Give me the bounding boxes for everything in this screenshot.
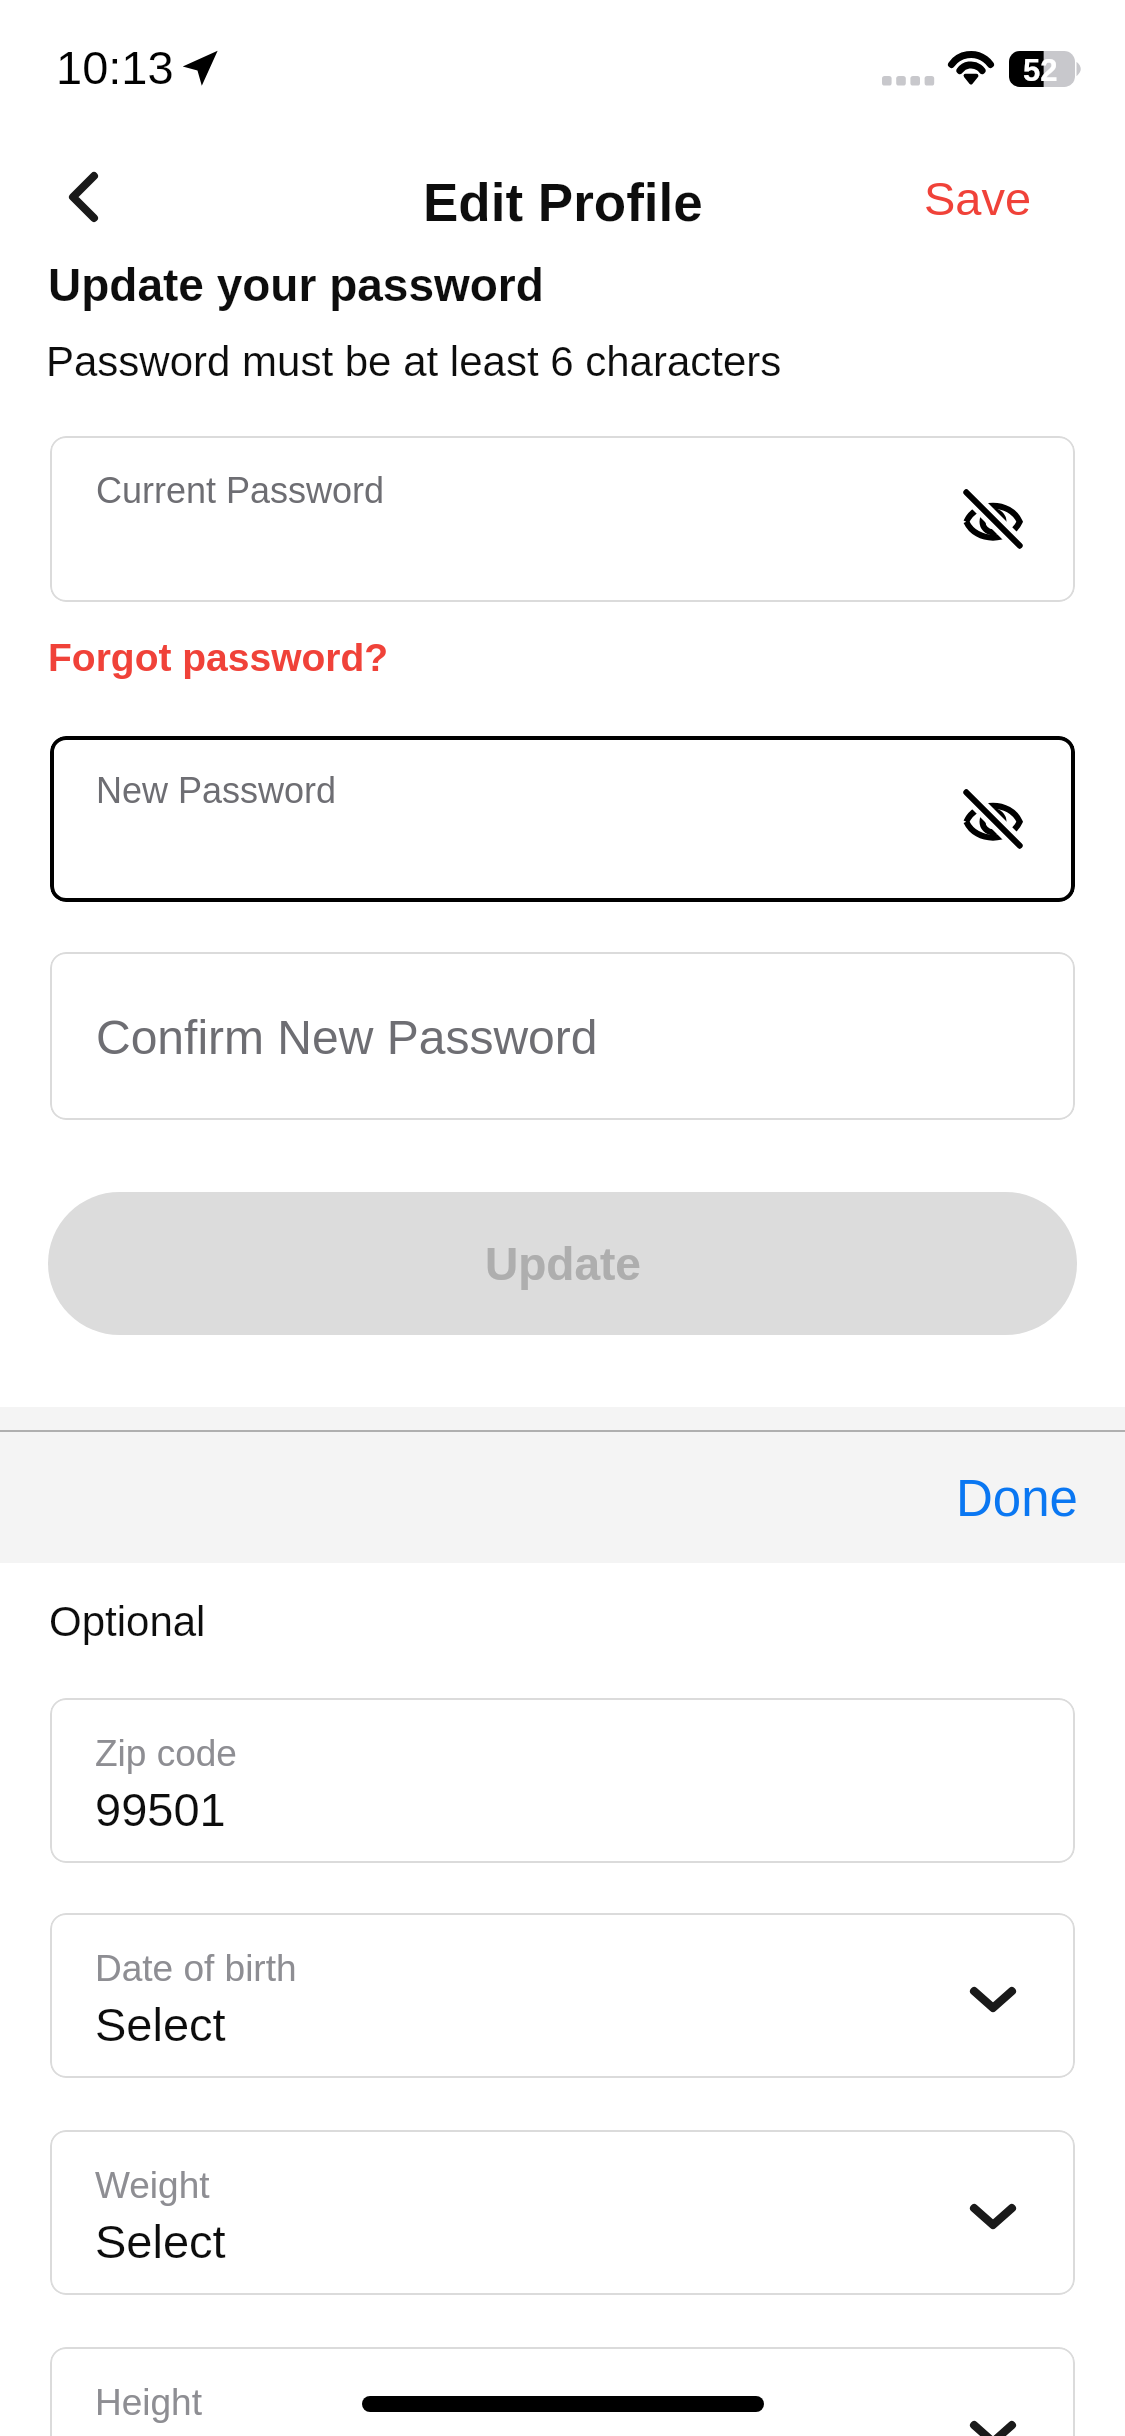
staticText: Save [924, 172, 1032, 225]
staticText: Done [956, 1470, 1078, 1527]
staticText: Select [95, 2215, 226, 2268]
button[interactable]: Height [50, 2347, 1075, 2436]
staticText: New Password [96, 770, 337, 810]
staticText: Select [95, 1998, 226, 2051]
staticText: 99501 [95, 1783, 226, 1836]
staticText: Zip code [95, 1733, 237, 1774]
staticText: 52 [1023, 53, 1058, 88]
button[interactable]: Update [48, 1192, 1077, 1335]
button[interactable]: Weight [50, 2130, 1075, 2295]
button[interactable]: Current Password [50, 436, 1075, 602]
button[interactable]: Date of birth [50, 1913, 1075, 2078]
staticText: Edit Profile [423, 173, 703, 232]
staticText: 10:13 [56, 41, 174, 94]
button[interactable]: Open Date of birth picker [951, 1957, 1035, 2041]
button[interactable]: Show password [941, 467, 1045, 571]
button[interactable]: Done [956, 1470, 1078, 1527]
button[interactable]: Open Height picker [951, 2391, 1035, 2436]
staticText: Current Password [96, 470, 385, 510]
button[interactable]: Zip code [50, 1698, 1075, 1863]
button[interactable]: New Password [50, 736, 1075, 902]
staticText: Optional [49, 1598, 206, 1645]
button[interactable]: Show password [941, 767, 1045, 871]
staticText: Height [95, 2382, 202, 2423]
button[interactable]: Open Weight picker [951, 2174, 1035, 2258]
staticText: Password must be at least 6 characters [46, 338, 782, 385]
button[interactable]: Forgot password? [48, 636, 389, 680]
staticText: Update your password [48, 259, 544, 310]
button[interactable]: Confirm New Password [50, 952, 1075, 1120]
staticText: Date of birth [95, 1948, 297, 1989]
button[interactable]: Save [924, 172, 1032, 225]
staticText: Weight [95, 2165, 210, 2206]
staticText: Update [485, 1238, 641, 1289]
staticText: Confirm New Password [96, 1011, 598, 1065]
button[interactable]: Back [38, 151, 130, 243]
staticText: Forgot password? [48, 636, 389, 680]
